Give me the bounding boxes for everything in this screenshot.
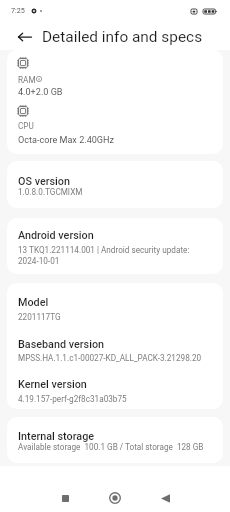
staticText: Internal storage xyxy=(18,430,95,443)
staticText: 2201117TG xyxy=(18,312,61,322)
button[interactable]: Model xyxy=(7,283,223,409)
staticText: Octa-core Max 2.40GHz xyxy=(18,135,115,146)
staticText: Detailed info and specs xyxy=(42,28,203,46)
button[interactable]: Home xyxy=(97,480,133,512)
staticText: 7:25 xyxy=(11,6,25,14)
staticText: 4.0+2.0 GB xyxy=(18,87,63,98)
button[interactable]: Back xyxy=(12,24,38,50)
staticText: MPSS.HA.1.1.c1-00027-KD_ALL_PACK-3.21298… xyxy=(18,353,202,363)
staticText: Kernel version xyxy=(18,378,87,391)
staticText: Android version xyxy=(18,229,94,242)
button[interactable]: Android version xyxy=(7,218,223,274)
button[interactable]: RAM xyxy=(7,50,223,154)
staticText: RAM xyxy=(18,75,36,85)
staticText: Available storage 100.1 GB / Total stora… xyxy=(18,442,204,452)
staticText: 4.19.157-perf-g2f8c31a03b75 xyxy=(18,394,127,404)
button[interactable]: Internal storage xyxy=(7,417,223,463)
button[interactable]: Recent apps xyxy=(47,480,83,512)
staticText: 13 TKQ1.221114.001 | Android security up… xyxy=(18,244,190,266)
staticText: Baseband version xyxy=(18,338,105,351)
button[interactable]: OS version xyxy=(7,161,223,208)
staticText: CPU xyxy=(18,121,34,131)
staticText: OS version xyxy=(18,175,71,188)
button[interactable]: Back xyxy=(147,480,183,512)
staticText: 1.0.8.0.TGCMIXM xyxy=(18,187,83,197)
staticText: Model xyxy=(18,296,49,309)
